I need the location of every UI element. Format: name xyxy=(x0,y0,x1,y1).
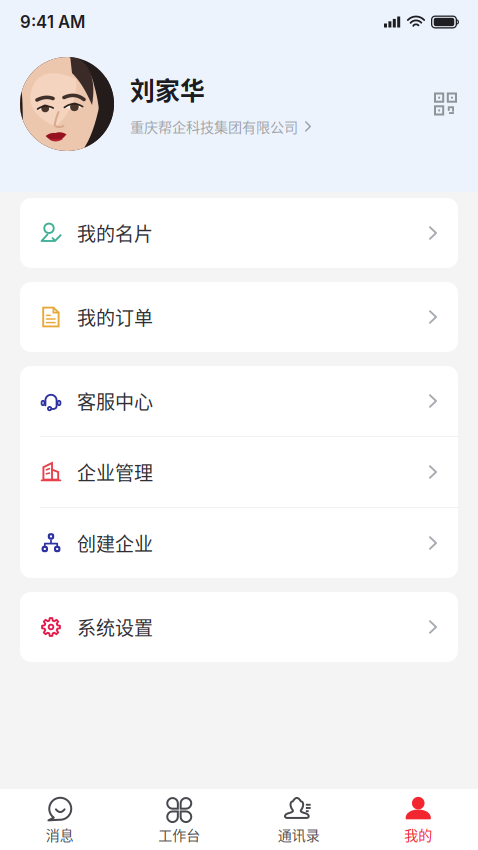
button[interactable]: 客服中心 xyxy=(20,366,458,436)
button[interactable]: 刘家华 xyxy=(0,44,478,164)
button[interactable]: 我的名片 xyxy=(20,198,458,268)
button[interactable]: 企业管理 xyxy=(20,437,458,507)
button[interactable]: 消息 xyxy=(0,785,119,850)
staticText: 重庆帮企科技集团有限公司 xyxy=(130,116,298,137)
staticText: 客服中心 xyxy=(77,387,153,415)
staticText: 工作台 xyxy=(158,824,200,845)
button[interactable]: 我的 xyxy=(358,785,478,850)
button[interactable]: 我的订单 xyxy=(20,282,458,352)
staticText: 我的订单 xyxy=(77,303,153,331)
button[interactable]: 工作台 xyxy=(119,785,239,850)
staticText: 我的 xyxy=(404,824,432,845)
button[interactable]: 系统设置 xyxy=(20,592,458,662)
staticText: 系统设置 xyxy=(77,613,153,641)
staticText: 刘家华 xyxy=(130,71,205,107)
staticText: 我的名片 xyxy=(77,219,153,247)
button[interactable]: 创建企业 xyxy=(20,508,458,578)
staticText: 通讯录 xyxy=(278,824,320,845)
button[interactable]: 通讯录 xyxy=(239,785,358,850)
staticText: 创建企业 xyxy=(77,529,153,557)
staticText: 9:41 AM xyxy=(20,12,85,32)
staticText: 企业管理 xyxy=(77,458,153,486)
staticText: 消息 xyxy=(46,824,74,845)
